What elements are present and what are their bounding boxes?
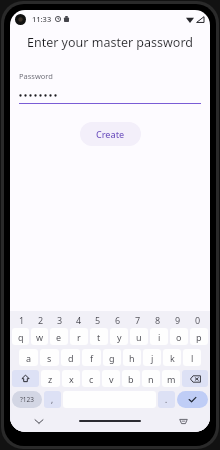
button[interactable]: i — [150, 328, 168, 345]
button[interactable]: r — [70, 328, 88, 345]
staticText: w — [36, 331, 44, 343]
button[interactable]: b — [122, 370, 140, 387]
staticText: a — [26, 352, 32, 364]
button[interactable]: 8 — [148, 313, 168, 326]
button[interactable]: n — [142, 370, 160, 387]
button[interactable]: m — [162, 370, 180, 387]
button[interactable]: Home — [79, 420, 141, 422]
button[interactable] — [19, 89, 201, 101]
staticText: l — [191, 352, 194, 364]
button[interactable]: 4 — [69, 313, 88, 326]
staticText: h — [129, 352, 135, 364]
staticText: r — [77, 331, 81, 343]
button[interactable]: 0 — [188, 313, 208, 326]
button[interactable]: a — [19, 349, 38, 366]
staticText: s — [47, 352, 52, 364]
staticText: Enter your master password — [10, 34, 210, 51]
staticText: m — [167, 373, 176, 385]
staticText: 0 — [195, 314, 201, 326]
staticText: 7 — [135, 314, 141, 326]
button[interactable]: h — [123, 349, 141, 366]
button[interactable]: z — [41, 370, 60, 387]
staticText: 5 — [95, 314, 101, 326]
button[interactable]: ?123 — [12, 391, 42, 408]
staticText: 1 — [19, 314, 25, 326]
staticText: Password — [19, 71, 53, 81]
staticText: 3 — [57, 314, 63, 326]
staticText: . — [165, 394, 168, 405]
button[interactable]: s — [40, 349, 59, 366]
staticText: 2 — [38, 314, 44, 326]
button[interactable]: Shift — [12, 370, 39, 387]
button[interactable]: 6 — [108, 313, 128, 326]
button[interactable]: 3 — [50, 313, 69, 326]
staticText: e — [56, 331, 62, 343]
staticText: p — [196, 331, 202, 343]
staticText: v — [109, 373, 114, 385]
staticText: y — [117, 331, 122, 343]
button[interactable]: f — [82, 349, 101, 366]
button[interactable]: 5 — [88, 313, 108, 326]
staticText: o — [176, 331, 182, 343]
staticText: 11:33 — [32, 14, 52, 24]
button[interactable]: Switch keyboard — [176, 414, 190, 428]
staticText: d — [68, 352, 74, 364]
button[interactable]: 2 — [31, 313, 50, 326]
staticText: f — [90, 352, 94, 364]
button[interactable]: q — [12, 328, 29, 345]
staticText: q — [18, 331, 24, 343]
staticText: x — [69, 373, 74, 385]
staticText: i — [158, 331, 161, 343]
staticText: 8 — [155, 314, 161, 326]
button[interactable]: 9 — [168, 313, 188, 326]
staticText: , — [51, 394, 54, 405]
staticText: b — [128, 373, 134, 385]
staticText: u — [136, 331, 142, 343]
button[interactable]: t — [90, 328, 108, 345]
button[interactable]: c — [82, 370, 100, 387]
button[interactable]: k — [163, 349, 181, 366]
button[interactable]: j — [143, 349, 161, 366]
button[interactable]: x — [62, 370, 80, 387]
button[interactable]: e — [50, 328, 68, 345]
staticText: 9 — [175, 314, 181, 326]
staticText: n — [148, 373, 154, 385]
staticText: t — [97, 331, 101, 343]
staticText: j — [151, 352, 154, 364]
button[interactable]: u — [130, 328, 148, 345]
button[interactable]: p — [190, 328, 208, 345]
button[interactable]: g — [103, 349, 121, 366]
button[interactable]: d — [61, 349, 80, 366]
staticText: k — [170, 352, 175, 364]
button[interactable]: , — [44, 391, 61, 408]
button[interactable]: Enter — [177, 391, 208, 408]
staticText: c — [89, 373, 94, 385]
button[interactable]: 7 — [128, 313, 148, 326]
button[interactable]: Backspace — [182, 370, 208, 387]
staticText: Create — [96, 128, 125, 140]
button[interactable]: v — [102, 370, 120, 387]
button[interactable]: 1 — [12, 313, 31, 326]
button[interactable]: w — [31, 328, 48, 345]
staticText: ?123 — [20, 395, 34, 404]
staticText: z — [48, 373, 53, 385]
button[interactable]: Create — [80, 122, 141, 146]
button[interactable]: l — [183, 349, 201, 366]
staticText: 6 — [115, 314, 121, 326]
button[interactable]: y — [110, 328, 128, 345]
button[interactable]: Hide keyboard — [32, 414, 46, 428]
staticText: g — [109, 352, 115, 364]
button[interactable]: . — [158, 391, 175, 408]
button[interactable]: o — [170, 328, 188, 345]
staticText: 4 — [76, 314, 82, 326]
